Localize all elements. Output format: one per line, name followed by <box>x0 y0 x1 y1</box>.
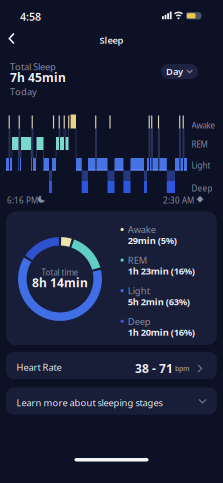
staticText: Light <box>191 160 210 171</box>
staticText: Today <box>10 85 37 98</box>
staticText: Learn more about sleeping stages <box>16 396 162 409</box>
staticText: 6:16 PM <box>7 195 38 206</box>
staticText: REM <box>128 254 147 266</box>
staticText: 2:30 AM <box>163 195 194 206</box>
staticText: Deep <box>128 315 151 327</box>
staticText: Awake <box>191 120 215 131</box>
staticText: Day <box>166 65 183 78</box>
button[interactable]: Learn more about sleeping stages <box>6 387 217 414</box>
staticText: 7h 45min <box>10 69 66 85</box>
staticText: 38 - 71 <box>135 360 173 376</box>
staticText: 1h 23min (16%) <box>128 265 195 277</box>
staticText: 1h 20min (16%) <box>128 326 195 338</box>
staticText: Total time <box>41 267 78 278</box>
staticText: 29min (5%) <box>128 234 177 247</box>
button[interactable]: Day <box>0 0 198 79</box>
staticText: Total Sleep <box>10 60 56 73</box>
staticText: Deep <box>191 183 212 194</box>
staticText: Sleep <box>99 34 123 46</box>
staticText: 4:58 <box>20 9 41 24</box>
button[interactable]: Back <box>0 0 15 44</box>
staticText: Light <box>128 284 150 297</box>
staticText: Awake <box>128 223 156 236</box>
staticText: REM <box>191 139 207 150</box>
staticText: 8h 14min <box>32 274 88 290</box>
button[interactable]: Heart Rate <box>6 352 217 379</box>
staticText: 5h 2min (63%) <box>128 295 190 308</box>
staticText: Heart Rate <box>16 361 61 373</box>
staticText: bpm <box>175 364 189 373</box>
